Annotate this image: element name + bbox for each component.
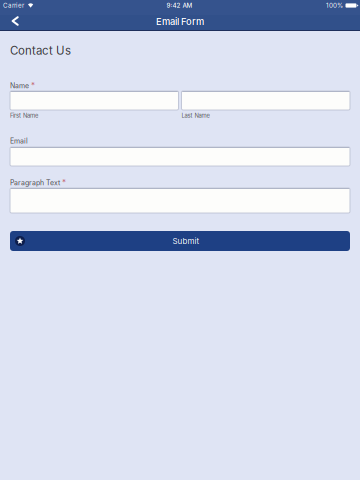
button[interactable]: Submit	[10, 231, 350, 251]
staticText: Email	[10, 137, 28, 145]
staticText: Carrier	[3, 2, 24, 9]
staticText: *	[31, 80, 35, 90]
staticText: 9:42 AM	[167, 2, 193, 9]
staticText: 100%	[326, 2, 343, 9]
staticText: *	[62, 177, 66, 187]
staticText: First Name	[10, 112, 38, 119]
staticText: Name	[10, 81, 29, 90]
staticText: Submit	[172, 236, 199, 246]
button[interactable]: Back	[0, 15, 34, 30]
staticText: Email Form	[156, 16, 204, 27]
staticText: Paragraph Text	[10, 178, 60, 187]
staticText: Contact Us	[10, 44, 71, 57]
staticText: Last Name	[181, 112, 209, 119]
